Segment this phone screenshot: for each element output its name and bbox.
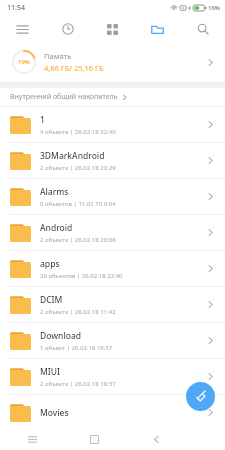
staticText: Android [40,222,73,234]
staticText: Память [44,51,72,61]
button[interactable]: Обзор [19,428,45,450]
button[interactable]: Недавние [45,16,90,42]
button[interactable]: DCIM [0,287,225,322]
staticText: 19% [18,58,30,66]
staticText: 2 объекта | 26.02.18 19:37 [40,380,116,388]
button[interactable]: apps [0,251,225,286]
staticText: MIUI [40,366,61,378]
button[interactable]: Movies [0,395,225,430]
staticText: 2 объекта | 26.02.18 20:29 [40,164,116,172]
staticText: 1 [40,114,45,126]
button[interactable]: Очистка [186,382,215,411]
button[interactable]: Download [0,323,225,358]
button[interactable]: 19% [0,42,225,82]
staticText: 4 объекта | 26.02.18 22:40 [40,128,116,136]
staticText: Movies [40,407,69,419]
staticText: 16% [208,4,220,12]
button[interactable]: Меню [0,16,45,42]
staticText: 2 объекта | 26.02.18 20:06 [40,236,116,244]
button[interactable]: Поиск [180,16,225,42]
button[interactable]: Внутренний общий накопитель [0,88,225,106]
button[interactable]: MIUI [0,359,225,394]
staticText: 0 объектов | 11.01.70 9:04 [40,200,116,208]
button[interactable]: Папки [135,16,180,42]
staticText: 11:54 [7,3,25,13]
button[interactable]: 3DMarkAndroid [0,143,225,178]
staticText: Внутренний общий накопитель [10,92,118,102]
button[interactable]: 1 [0,107,225,142]
staticText: Download [40,330,82,342]
staticText: Alarms [40,186,69,198]
button[interactable]: Android [0,215,225,250]
staticText: 4,86 ГБ/ 25,16 ГБ [44,63,104,73]
button[interactable]: Главный экран [81,428,107,450]
staticText: DCIM [40,294,63,306]
staticText: 2 объекта | 28.02.18 11:42 [40,308,116,316]
staticText: 3DMarkAndroid [40,150,105,162]
staticText: 1 объект | 26.02.18 19:37 [40,344,113,352]
staticText: apps [40,258,60,270]
button[interactable]: Alarms [0,179,225,214]
button[interactable]: Категории [90,16,135,42]
button[interactable]: Назад [143,428,169,450]
staticText: 20 объектов | 26.02.18 22:40 [40,272,123,280]
